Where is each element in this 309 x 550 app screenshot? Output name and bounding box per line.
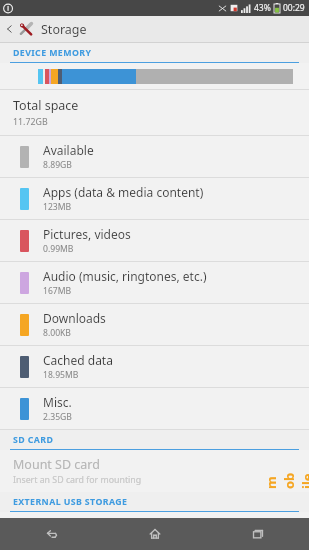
staticText: mobile.ir bbox=[262, 469, 309, 489]
staticText: Mount SD card bbox=[13, 456, 100, 473]
button[interactable]: Audio (music, ringtones, etc.) bbox=[0, 262, 309, 303]
staticText: 0.99MB bbox=[43, 243, 74, 255]
staticText: 167MB bbox=[43, 285, 72, 297]
staticText: 123MB bbox=[43, 201, 72, 213]
staticText: Apps (data & media content) bbox=[43, 184, 204, 200]
button[interactable]: Total space bbox=[0, 90, 309, 135]
staticText: Insert an SD card for mounting bbox=[13, 474, 142, 486]
staticText: DEVICE MEMORY bbox=[13, 47, 92, 59]
staticText: Misc. bbox=[43, 394, 72, 410]
button[interactable]: Mount SD card bbox=[0, 450, 309, 492]
button[interactable]: Back bbox=[0, 518, 103, 550]
staticText: Audio (music, ringtones, etc.) bbox=[43, 268, 207, 284]
staticText: Downloads bbox=[43, 310, 106, 326]
button[interactable]: Apps (data & media content) bbox=[0, 178, 309, 219]
staticText: 43% bbox=[254, 2, 271, 14]
button[interactable]: Cached data bbox=[0, 346, 309, 387]
staticText: Storage bbox=[41, 21, 87, 38]
button[interactable]: Home bbox=[103, 518, 206, 550]
button[interactable]: Misc. bbox=[0, 388, 309, 429]
button[interactable]: Downloads bbox=[0, 304, 309, 345]
staticText: 18.95MB bbox=[43, 369, 79, 381]
staticText: 8.00KB bbox=[43, 327, 71, 339]
staticText: SD CARD bbox=[13, 434, 54, 446]
staticText: 8.89GB bbox=[43, 159, 72, 171]
button[interactable]: Pictures, videos bbox=[0, 220, 309, 261]
button[interactable]: Recent apps bbox=[206, 518, 309, 550]
staticText: Available bbox=[43, 142, 94, 158]
staticText: EXTERNAL USB STORAGE bbox=[13, 496, 128, 508]
staticText: Total space bbox=[13, 97, 79, 114]
staticText: 2.35GB bbox=[43, 411, 72, 423]
staticText: 11.72GB bbox=[13, 116, 48, 128]
button[interactable]: Back to Settings bbox=[0, 16, 309, 42]
button[interactable]: Available bbox=[0, 136, 309, 177]
staticText: 00:29 bbox=[283, 2, 305, 14]
staticText: Cached data bbox=[43, 352, 113, 368]
staticText: Pictures, videos bbox=[43, 226, 131, 242]
